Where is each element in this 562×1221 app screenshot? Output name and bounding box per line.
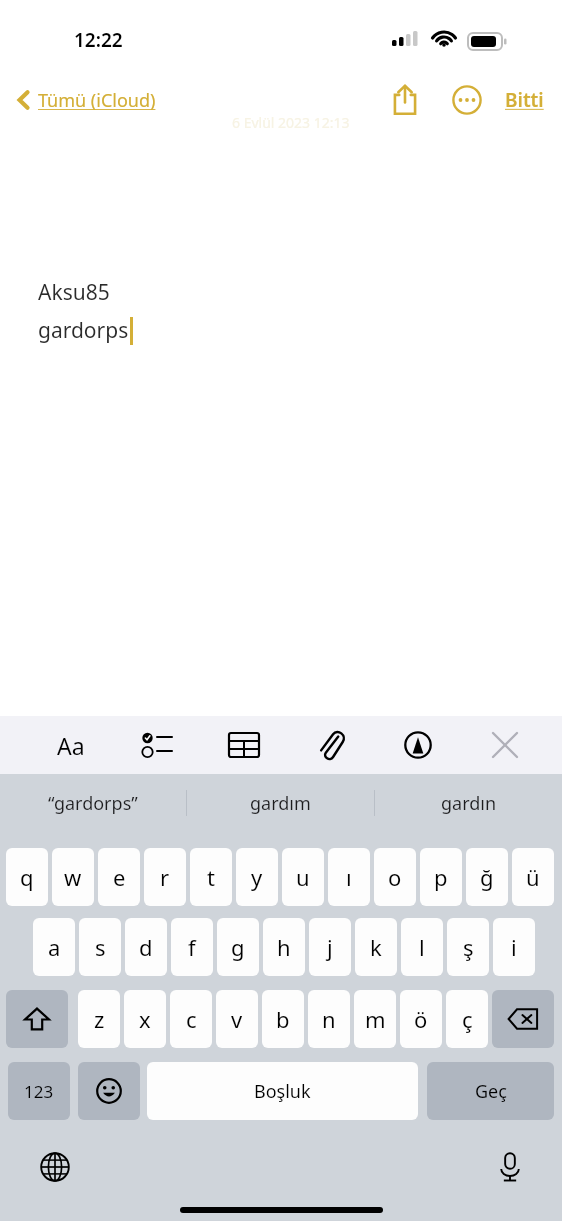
staticText: g [231,932,245,962]
button[interactable]: f [171,918,213,976]
staticText: e [113,862,126,892]
button[interactable]: Geri, Tümü (iCloud) [16,72,156,128]
staticText: Aa [57,730,85,761]
staticText: d [139,932,153,962]
button[interactable]: Klavye değiştir [32,1144,78,1190]
button[interactable]: ö [400,990,442,1048]
staticText: 12:22 [74,27,123,53]
staticText: p [434,862,448,892]
button[interactable]: Dikte [487,1144,533,1190]
staticText: z [94,1004,105,1034]
button[interactable]: h [263,918,305,976]
button[interactable]: d [125,918,167,976]
button[interactable]: l [401,918,443,976]
staticText: j [327,932,333,962]
button[interactable]: ı [328,848,370,906]
button[interactable]: Boşluk [147,1062,418,1120]
button[interactable]: q [6,848,48,906]
button[interactable]: i [493,918,535,976]
staticText: v [231,1004,243,1034]
staticText: ğ [480,862,494,892]
button[interactable]: c [170,990,212,1048]
button[interactable]: Tablo [221,716,267,774]
button[interactable]: Daha fazla [443,76,491,124]
button[interactable]: ş [447,918,489,976]
staticText: Aksu85 [38,278,110,307]
button[interactable]: t [190,848,232,906]
staticText: Bitti [505,87,544,113]
button[interactable]: 123 klavyesi [8,1062,70,1120]
staticText: k [370,932,382,962]
button[interactable]: u [282,848,324,906]
staticText: gardorps [38,316,129,345]
staticText: r [160,862,170,892]
staticText: Geç [475,1079,507,1104]
staticText: l [419,932,425,962]
staticText: w [64,862,82,892]
button[interactable]: Paylaş [381,76,429,124]
staticText: Boşluk [254,1079,311,1104]
staticText: o [388,862,402,892]
button[interactable]: p [420,848,462,906]
button[interactable]: “gardorps” [0,774,186,832]
staticText: c [186,1004,197,1034]
staticText: gardın [441,791,497,816]
staticText: ü [526,862,540,892]
button[interactable]: y [236,848,278,906]
staticText: ö [414,1004,428,1034]
button[interactable]: gardın [375,774,562,832]
button[interactable]: b [262,990,304,1048]
button[interactable]: ü [512,848,554,906]
button[interactable]: x [124,990,166,1048]
button[interactable]: o [374,848,416,906]
staticText: gardım [250,791,311,816]
button[interactable]: Shift [6,990,68,1048]
button[interactable]: w [52,848,94,906]
staticText: a [48,932,61,962]
button[interactable]: Sil [492,990,554,1048]
button[interactable]: Geç [427,1062,554,1120]
staticText: x [139,1004,151,1034]
button[interactable]: Ek [308,716,354,774]
button[interactable]: Bitti [501,77,548,123]
staticText: h [277,932,291,962]
button[interactable]: n [308,990,350,1048]
staticText: “gardorps” [48,791,138,816]
staticText: f [188,932,196,962]
button[interactable]: ç [446,990,488,1048]
button[interactable]: v [216,990,258,1048]
staticText: t [207,862,215,892]
staticText: n [322,1004,336,1034]
button[interactable]: ğ [466,848,508,906]
staticText: i [511,932,517,962]
staticText: ı [346,862,352,892]
staticText: q [20,862,34,892]
button[interactable]: Metin biçimi [48,716,94,774]
staticText: m [365,1004,386,1034]
button[interactable]: r [144,848,186,906]
button[interactable]: k [355,918,397,976]
staticText: b [276,1004,290,1034]
button[interactable]: Kontrol listesi [134,716,180,774]
button[interactable]: Kapat [482,716,528,774]
button[interactable]: Emoji [78,1062,140,1120]
button[interactable]: m [354,990,396,1048]
button[interactable]: Çizim [395,716,441,774]
staticText: s [95,932,106,962]
staticText: ş [463,932,474,962]
button[interactable]: gardım [187,774,374,832]
button[interactable]: g [217,918,259,976]
staticText: 6 Eylül 2023 12:13 [232,113,350,132]
button[interactable]: e [98,848,140,906]
button[interactable]: j [309,918,351,976]
staticText: ç [462,1004,473,1034]
staticText: Tümü (iCloud) [38,88,156,113]
button[interactable]: z [78,990,120,1048]
staticText: u [296,862,310,892]
button[interactable]: a [33,918,75,976]
button[interactable]: s [79,918,121,976]
staticText: y [251,862,263,892]
staticText: 123 [24,1080,54,1103]
